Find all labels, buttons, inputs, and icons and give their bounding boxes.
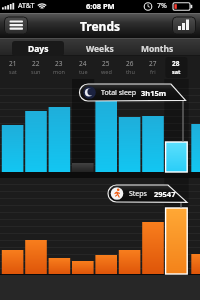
button[interactable]: Weeks	[75, 41, 125, 56]
button[interactable]	[95, 57, 118, 78]
staticText: 26	[126, 59, 134, 68]
staticText: 7%	[157, 1, 167, 11]
button[interactable]	[1, 57, 24, 78]
button[interactable]	[5, 17, 29, 34]
staticText: sun	[31, 68, 41, 75]
staticText: Months	[141, 43, 174, 55]
staticText: Days	[28, 43, 49, 55]
staticText: sat	[9, 68, 17, 75]
staticText: 24	[79, 59, 87, 68]
staticText: 29547	[154, 189, 176, 199]
button[interactable]	[48, 57, 71, 78]
staticText: mon	[53, 68, 65, 75]
staticText: thu	[126, 68, 135, 75]
staticText: 23	[55, 59, 63, 68]
staticText: Steps	[129, 189, 147, 199]
staticText: fri	[150, 68, 156, 75]
button[interactable]	[165, 57, 188, 78]
staticText: 6:08 PM	[86, 1, 115, 11]
staticText: Trends	[80, 18, 121, 34]
staticText: 25	[102, 59, 110, 68]
staticText: sat	[172, 68, 181, 75]
staticText: 28	[172, 59, 180, 68]
button[interactable]	[142, 57, 165, 78]
staticText: 3h15m	[141, 88, 167, 98]
staticText: 27	[149, 59, 157, 68]
staticText: 21	[9, 59, 17, 68]
button[interactable]	[25, 57, 48, 78]
staticText: Weeks	[86, 43, 114, 55]
staticText: Total sleep	[101, 88, 137, 98]
staticText: AT&T	[18, 1, 35, 11]
button[interactable]: Months	[132, 41, 182, 56]
button[interactable]	[118, 57, 141, 78]
button[interactable]	[71, 57, 94, 78]
staticText: wed	[101, 68, 112, 75]
staticText: 22	[32, 59, 40, 68]
button[interactable]: Days	[12, 41, 64, 56]
button[interactable]	[172, 16, 195, 35]
staticText: tue	[79, 68, 88, 75]
